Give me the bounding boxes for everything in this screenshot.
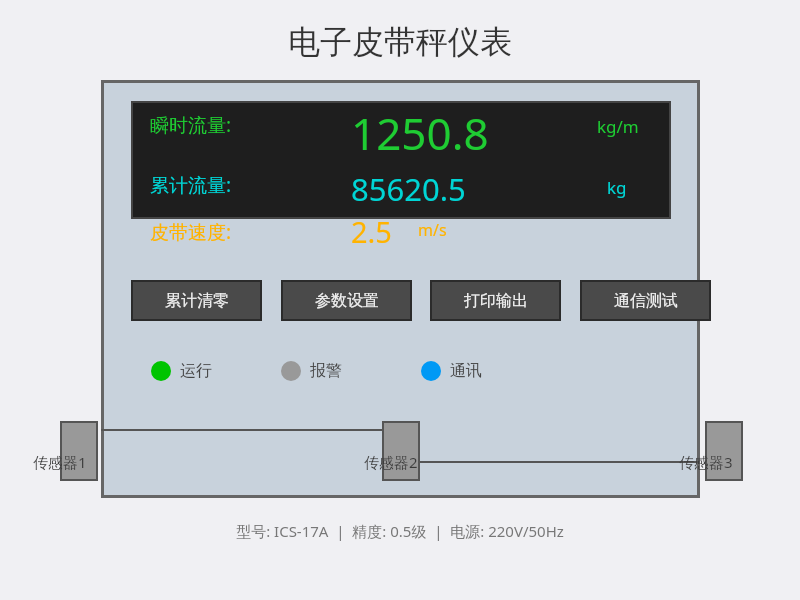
staticText: 皮带速度: <box>150 219 232 245</box>
button[interactable] <box>705 421 743 481</box>
staticText: 参数设置 <box>315 291 379 311</box>
staticText: 运行 <box>180 361 212 381</box>
staticText: 传感器3 <box>679 452 733 472</box>
staticText: kg <box>607 176 627 199</box>
staticText: 通信测试 <box>614 291 678 311</box>
staticText: 2.5 <box>351 212 392 251</box>
button[interactable]: 打印输出 <box>430 280 561 321</box>
button[interactable] <box>60 421 98 481</box>
staticText: m/s <box>418 219 447 241</box>
button[interactable]: 参数设置 <box>281 280 412 321</box>
staticText: 传感器1 <box>33 452 87 472</box>
staticText: 型号: ICS-17A | 精度: 0.5级 | 电源: 220V/50Hz <box>120 521 680 551</box>
staticText: 累计流量: <box>150 172 232 198</box>
staticText: kg/m <box>597 115 639 138</box>
button[interactable]: 通信测试 <box>580 280 711 321</box>
staticText: 累计清零 <box>165 291 229 311</box>
button[interactable] <box>382 421 420 481</box>
staticText: 报警 <box>310 361 342 381</box>
staticText: 通讯 <box>450 361 482 381</box>
button[interactable]: 累计清零 <box>131 280 262 321</box>
staticText: 85620.5 <box>351 168 466 210</box>
staticText: 电子皮带秤仪表 <box>170 22 630 86</box>
button[interactable]: Running status <box>151 361 171 381</box>
staticText: 瞬时流量: <box>150 112 232 138</box>
staticText: 1250.8 <box>351 103 489 163</box>
button[interactable]: Communication status <box>421 361 441 381</box>
staticText: 传感器2 <box>364 452 418 472</box>
button[interactable]: Alarm status <box>281 361 301 381</box>
staticText: 打印输出 <box>464 291 528 311</box>
